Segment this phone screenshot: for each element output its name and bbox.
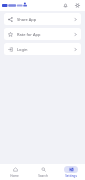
button[interactable]: Home [0, 164, 29, 180]
button[interactable]: Notifications [61, 1, 70, 10]
button[interactable]: Search [29, 164, 57, 180]
button[interactable]: Login [4, 43, 81, 55]
button[interactable]: App logo [2, 2, 28, 9]
staticText: Home [10, 174, 19, 178]
button[interactable]: Settings [57, 164, 85, 180]
staticText: Rate for App [17, 32, 41, 37]
button[interactable]: Settings [73, 1, 82, 10]
staticText: Search [38, 174, 48, 178]
button[interactable]: Rate for App [4, 28, 81, 40]
staticText: Login [17, 47, 28, 52]
staticText: Share App [17, 17, 37, 22]
button[interactable]: Share App [4, 13, 81, 25]
staticText: Settings [65, 174, 77, 178]
